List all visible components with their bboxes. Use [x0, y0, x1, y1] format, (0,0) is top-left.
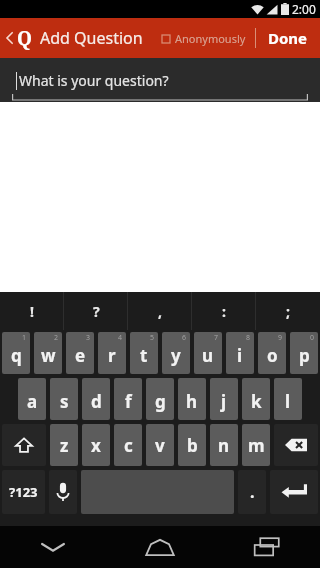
staticText: ?123 [9, 483, 38, 501]
staticText: 6 [182, 333, 187, 343]
button[interactable]: k [242, 378, 270, 420]
button[interactable]: ?123 [2, 470, 45, 514]
staticText: , [158, 302, 162, 321]
button[interactable]: v [146, 424, 174, 466]
staticText: x [91, 434, 101, 457]
button[interactable]: i [226, 332, 254, 374]
button[interactable]: c [114, 424, 142, 466]
button[interactable]: ! [0, 292, 64, 330]
staticText: l [285, 390, 291, 413]
button[interactable]: a [18, 378, 46, 420]
staticText: s [60, 390, 69, 413]
staticText: d [91, 390, 102, 413]
staticText: f [125, 390, 132, 413]
button[interactable]: n [210, 424, 238, 466]
button[interactable]: Enter [270, 470, 318, 514]
staticText: g [155, 390, 166, 413]
button[interactable]: m [242, 424, 270, 466]
button[interactable]: z [50, 424, 78, 466]
staticText: 5 [150, 333, 155, 343]
button[interactable]: ; [256, 292, 320, 330]
staticText: 7 [214, 333, 219, 343]
staticText: c [124, 434, 133, 457]
button[interactable]: Recent apps [213, 526, 320, 568]
staticText: k [251, 390, 262, 413]
button[interactable]: Anonymously [158, 25, 250, 52]
staticText: Anonymously [175, 31, 246, 46]
button[interactable]: p [290, 332, 318, 374]
staticText: b [187, 434, 198, 457]
button[interactable]: : [192, 292, 256, 330]
staticText: ; [286, 302, 290, 321]
staticText: 1 [22, 333, 27, 343]
staticText: 4 [118, 333, 123, 343]
staticText: p [299, 344, 310, 367]
staticText: w [41, 344, 56, 367]
staticText: 2:00 [292, 1, 316, 17]
button[interactable]: e [66, 332, 94, 374]
staticText: v [155, 434, 165, 457]
button[interactable]: Done [256, 19, 320, 57]
button[interactable]: Voice input [49, 470, 77, 514]
staticText: n [218, 434, 230, 457]
staticText: z [60, 434, 69, 457]
staticText: 2 [54, 333, 59, 343]
button[interactable]: w [34, 332, 62, 374]
staticText: 3 [86, 333, 91, 343]
staticText: t [140, 344, 148, 367]
button[interactable]: g [146, 378, 174, 420]
staticText: h [186, 390, 198, 413]
staticText: y [171, 344, 181, 367]
staticText: a [27, 390, 38, 413]
staticText: Done [268, 28, 308, 48]
button[interactable]: o [258, 332, 286, 374]
button[interactable]: r [98, 332, 126, 374]
staticText: o [267, 344, 278, 367]
staticText: 0 [310, 333, 315, 343]
button[interactable]: Hide keyboard [0, 526, 106, 568]
staticText: i [237, 344, 243, 367]
button[interactable]: s [50, 378, 78, 420]
button[interactable]: Back [5, 25, 143, 51]
staticText: . [250, 481, 255, 503]
button[interactable]: t [130, 332, 158, 374]
staticText: ? [93, 302, 100, 321]
button[interactable]: y [162, 332, 190, 374]
button[interactable]: q [2, 332, 30, 374]
staticText: u [202, 344, 214, 367]
staticText: j [221, 390, 227, 413]
staticText: r [108, 344, 116, 367]
button[interactable]: x [82, 424, 110, 466]
staticText: What is your question? [19, 71, 169, 90]
staticText: : [222, 302, 226, 321]
staticText: e [75, 344, 86, 367]
staticText: 9 [278, 333, 283, 343]
button[interactable]: u [194, 332, 222, 374]
button[interactable]: . [238, 470, 266, 514]
staticText: ! [30, 302, 34, 321]
staticText: q [11, 344, 22, 367]
staticText: m [248, 434, 265, 457]
button[interactable]: h [178, 378, 206, 420]
button[interactable]: Shift [2, 424, 46, 466]
button[interactable]: l [274, 378, 302, 420]
button[interactable]: ? [64, 292, 128, 330]
button[interactable]: j [210, 378, 238, 420]
button[interactable]: Home [106, 526, 213, 568]
button[interactable]: d [82, 378, 110, 420]
other: Back [5, 30, 14, 46]
button[interactable]: b [178, 424, 206, 466]
button[interactable]: Backspace [274, 424, 318, 466]
staticText: Q [17, 25, 32, 51]
button[interactable]: , [128, 292, 192, 330]
staticText: 8 [246, 333, 251, 343]
button[interactable]: f [114, 378, 142, 420]
staticText: Add Question [40, 27, 143, 49]
